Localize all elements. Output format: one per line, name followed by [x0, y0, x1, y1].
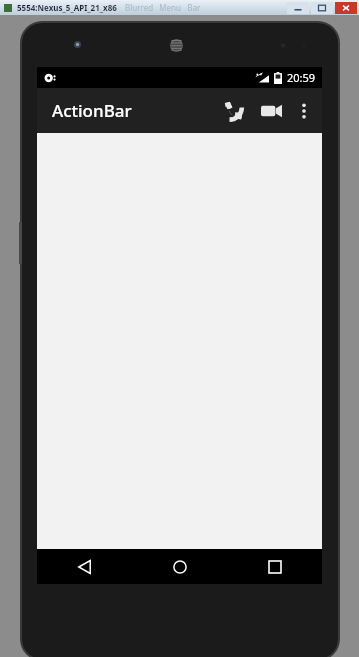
button[interactable]: Back — [37, 549, 132, 584]
button[interactable]: Window control — [311, 2, 333, 14]
button[interactable]: Recent apps — [227, 549, 322, 584]
staticText: 20:59 — [287, 70, 316, 85]
button[interactable]: More options — [290, 88, 318, 133]
button[interactable]: Home — [132, 549, 227, 584]
button[interactable]: Window control — [335, 2, 357, 14]
button[interactable]: Call — [214, 88, 252, 133]
staticText: ActionBar — [52, 99, 132, 122]
button[interactable]: Video call — [252, 88, 290, 133]
staticText: 5554:Nexus_5_API_21_x86 — [17, 2, 117, 13]
button[interactable]: Window control — [287, 2, 309, 14]
staticText: Blurred Menu Bar — [125, 2, 201, 13]
